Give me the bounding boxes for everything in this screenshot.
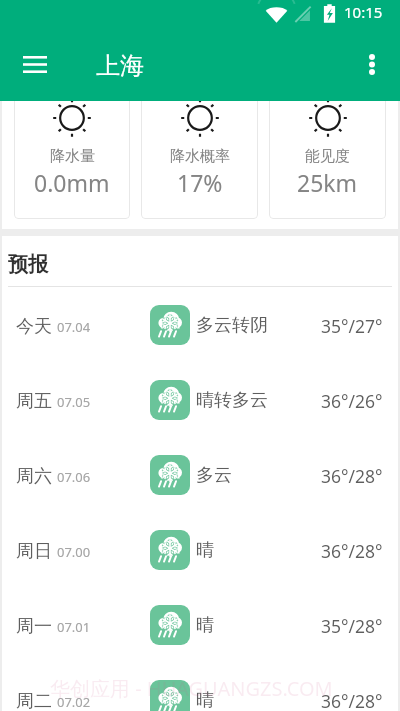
staticText: 35°/28°	[321, 614, 383, 638]
staticText: 降水量	[50, 147, 95, 166]
button[interactable]: More options	[350, 42, 394, 86]
staticText: 晴转多云	[196, 389, 268, 412]
staticText: 周日	[16, 540, 52, 563]
button[interactable]: 能见度	[269, 101, 386, 219]
staticText: 0.0mm	[34, 167, 110, 198]
staticText: 07.00	[57, 543, 91, 561]
staticText: 36°/28°	[321, 539, 383, 563]
staticText: 今天	[16, 315, 52, 338]
staticText: 17%	[177, 167, 223, 198]
staticText: 上海	[96, 51, 144, 81]
button[interactable]: Open navigation menu	[11, 40, 59, 88]
button[interactable]: 降水概率	[141, 101, 258, 219]
staticText: 36°/26°	[321, 389, 383, 413]
staticText: 华创应用 - HUAGUANGZS.COM	[50, 675, 333, 702]
staticText: 10:15	[344, 2, 383, 22]
staticText: 36°/28°	[321, 464, 383, 488]
button[interactable]: 周二	[2, 662, 398, 711]
staticText: 晴	[196, 539, 214, 562]
button[interactable]: 降水量	[14, 101, 130, 219]
staticText: 预报	[8, 252, 48, 277]
staticText: 07.02	[57, 693, 91, 711]
staticText: 07.06	[57, 468, 91, 486]
button[interactable]: 周六	[2, 437, 398, 512]
button[interactable]: 周日	[2, 512, 398, 587]
staticText: 07.01	[57, 618, 91, 636]
staticText: 周一	[16, 615, 52, 638]
staticText: 多云	[196, 464, 232, 487]
staticText: 能见度	[305, 147, 350, 166]
staticText: 降水概率	[170, 147, 230, 166]
staticText: 07.05	[57, 393, 91, 411]
staticText: 晴	[196, 614, 214, 637]
staticText: 25km	[297, 167, 358, 198]
staticText: 周五	[16, 390, 52, 413]
staticText: 36°/28°	[321, 689, 383, 711]
button[interactable]: 周五	[2, 362, 398, 437]
staticText: 周六	[16, 465, 52, 488]
staticText: 35°/27°	[321, 314, 383, 338]
staticText: 晴	[196, 689, 214, 711]
staticText: 07.04	[57, 318, 91, 336]
button[interactable]: 周一	[2, 587, 398, 662]
button[interactable]: 今天	[2, 287, 398, 362]
staticText: 周二	[16, 690, 52, 711]
staticText: 多云转阴	[196, 314, 268, 337]
